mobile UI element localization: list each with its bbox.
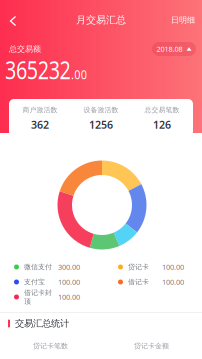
staticText: 贷记卡金额 xyxy=(134,342,169,350)
staticText: 100.00 xyxy=(162,262,184,272)
staticText: 借记卡 xyxy=(128,278,149,286)
staticText: 设备激活数 xyxy=(83,106,118,114)
staticText: 362 xyxy=(31,117,49,132)
staticText: 300.00 xyxy=(58,262,80,272)
button[interactable]: 2018.08 xyxy=(152,42,196,56)
staticText: 商户激活数 xyxy=(22,106,57,114)
staticText: 100.00 xyxy=(58,277,80,287)
staticText: 2018.08 xyxy=(156,44,182,54)
staticText: 126 xyxy=(153,117,171,132)
staticText: 交易汇总统计 xyxy=(15,318,69,329)
staticText: 贷记卡笔数 xyxy=(33,342,68,350)
staticText: 贷记卡 xyxy=(128,263,149,271)
staticText: 月交易汇总 xyxy=(76,14,126,26)
staticText: 100.00 xyxy=(162,277,184,287)
staticText: 日明细 xyxy=(171,15,195,25)
staticText: 借记卡封顶 xyxy=(24,288,52,306)
button[interactable]: 日明细 xyxy=(166,9,200,31)
staticText: 1256 xyxy=(89,117,113,132)
button[interactable]: Back xyxy=(0,8,26,34)
staticText: .00 xyxy=(71,65,91,83)
staticText: 365232 xyxy=(5,52,89,87)
staticText: 总交易额 xyxy=(9,44,41,54)
staticText: 总交易笔数 xyxy=(144,106,179,114)
staticText: 支付宝 xyxy=(24,278,45,286)
staticText: 微信支付 xyxy=(24,263,52,271)
staticText: 100.00 xyxy=(58,292,80,302)
